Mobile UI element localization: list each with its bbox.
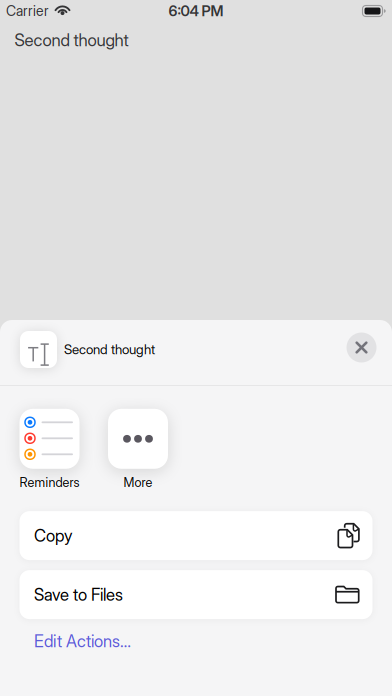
staticText: 6:04 PM [168,2,223,20]
button[interactable]: Save to Files [19,570,372,619]
staticText: Edit Actions… [34,631,131,651]
button[interactable]: Edit Actions… [34,631,131,651]
staticText: Carrier [6,2,49,19]
button[interactable]: More [100,409,176,490]
staticText: Second thought [64,341,155,357]
staticText: Reminders [19,475,79,490]
staticText: Copy [34,525,73,546]
button[interactable]: Reminders [11,409,87,490]
staticText: More [123,475,152,490]
button[interactable] [346,332,376,362]
staticText: Save to Files [34,584,123,605]
button[interactable]: Copy [19,511,372,560]
staticText: Second thought [14,30,128,50]
